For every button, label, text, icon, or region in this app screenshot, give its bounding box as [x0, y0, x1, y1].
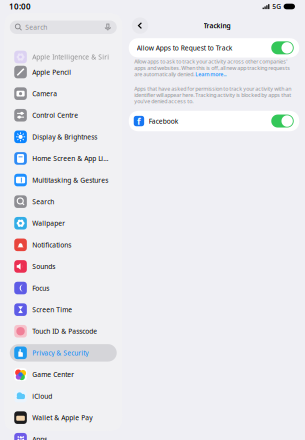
staticText: Apple Pencil [32, 68, 71, 76]
staticText: 10:00 [9, 1, 31, 12]
staticText: Apple Intelligence & Siri [32, 53, 109, 61]
staticText: Apps that have asked for permission to t… [134, 85, 291, 92]
button[interactable]: Multitasking & Gestures [10, 171, 117, 189]
staticText: Game Center [32, 370, 74, 379]
button[interactable]: Wallpaper [10, 214, 117, 232]
staticText: Privacy & Security [32, 348, 88, 357]
button[interactable]: Search [10, 193, 117, 210]
button[interactable]: Sounds [10, 258, 117, 275]
staticText: you've denied access to. [134, 98, 193, 105]
button[interactable]: Notifications [10, 236, 117, 254]
staticText: f [137, 115, 141, 127]
button[interactable]: Apple Pencil [10, 63, 117, 81]
staticText: Multitasking & Gestures [32, 176, 108, 184]
staticText: Home Screen & App Library [32, 154, 108, 163]
button[interactable]: Learn more... [195, 71, 226, 78]
button[interactable]: Camera [10, 85, 117, 102]
staticText: Focus [32, 284, 49, 292]
staticText: are automatically denied. [134, 71, 195, 78]
staticText: Camera [32, 89, 57, 98]
staticText: Search [32, 197, 54, 206]
staticText: Tracking [203, 21, 230, 30]
button[interactable]: Game Center [10, 366, 117, 383]
button[interactable]: Touch ID & Passcode [10, 322, 117, 340]
staticText: Search [25, 23, 47, 32]
staticText: Allow apps to ask to track your activity… [134, 58, 287, 65]
button[interactable]: Search [10, 20, 117, 34]
staticText: Screen Time [32, 305, 72, 314]
button[interactable]: Display & Brightness [10, 128, 117, 146]
button[interactable]: Back [132, 17, 148, 34]
button[interactable]: Screen Time [10, 301, 117, 318]
staticText: Allow Apps to Request to Track [137, 43, 233, 52]
button[interactable]: iCloud [10, 387, 117, 405]
staticText: Touch ID & Passcode [32, 327, 97, 336]
button[interactable]: Allow Apps to Request to Track [129, 38, 299, 57]
staticText: Wallet & Apple Pay [32, 413, 92, 422]
staticText: Notifications [32, 240, 71, 249]
button[interactable]: Focus [10, 279, 117, 297]
button[interactable]: f [129, 111, 299, 131]
staticText: Wallpaper [32, 219, 65, 228]
staticText: Apps [32, 435, 47, 440]
staticText: identifier will appear here. Tracking ac… [134, 91, 291, 98]
staticText: apps and websites. When this is off, all… [134, 64, 290, 71]
staticText: iCloud [32, 392, 52, 400]
button[interactable]: Apps [10, 430, 117, 440]
staticText: Display & Brightness [32, 132, 97, 141]
button[interactable]: Wallet & Apple Pay [10, 409, 117, 426]
staticText: 5G [272, 2, 281, 11]
button[interactable]: Home Screen & App Library [10, 150, 117, 167]
staticText: Control Centre [32, 111, 78, 120]
staticText: Facebook [149, 117, 179, 125]
staticText: Sounds [32, 262, 55, 271]
staticText: Learn more... [195, 71, 226, 78]
button[interactable]: Privacy & Security [10, 344, 117, 362]
button[interactable]: Control Centre [10, 106, 117, 124]
